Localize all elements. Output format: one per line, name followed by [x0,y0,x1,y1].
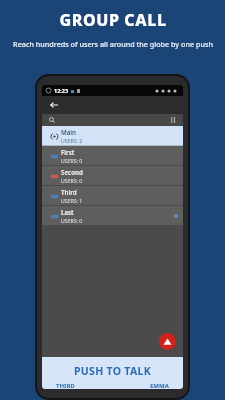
staticText: THIRD [56,382,75,389]
staticText: 12:23 [54,87,69,94]
button[interactable]: Search [47,115,57,125]
button[interactable]: Back [47,98,61,112]
button[interactable]: Main [42,126,183,146]
button[interactable]: First [42,146,183,166]
staticText: Last [61,208,74,216]
button[interactable]: PUSH TO TALK [42,357,183,389]
staticText: USERS: 0 [61,177,83,184]
button[interactable]: Last [42,206,183,226]
staticText: USERS: 2 [61,137,83,144]
staticText: USERS: 1 [61,197,83,204]
staticText: Reach hundreds of users all around the g… [13,39,213,49]
button[interactable]: Emergency alert [159,333,176,350]
staticText: PUSH TO TALK [74,364,151,378]
staticText: Third [61,188,77,196]
staticText: USERS: 0 [61,157,83,164]
staticText: GROUP CALL [59,9,167,31]
button[interactable]: Sort [168,115,178,125]
staticText: Main [61,128,77,136]
button[interactable]: Second [42,166,183,186]
staticText: First [61,148,75,156]
staticText: EMMA [150,382,169,389]
staticText: USERS: 0 [61,217,83,224]
staticText: Second [61,168,83,176]
button[interactable]: Third [42,186,183,206]
